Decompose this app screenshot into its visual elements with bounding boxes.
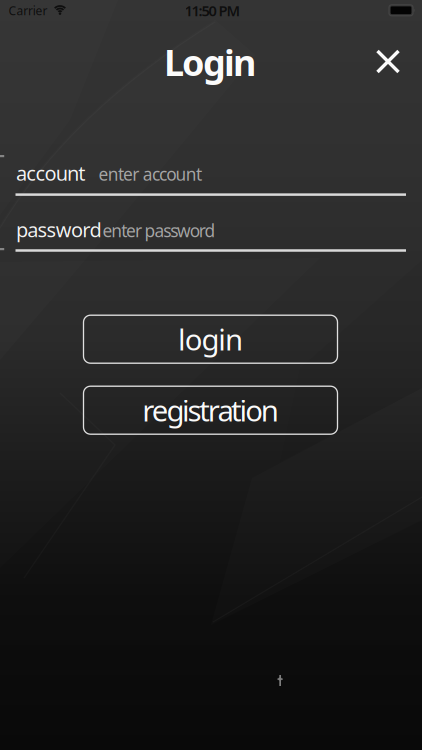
staticText: account — [16, 160, 85, 186]
button[interactable]: Close — [366, 39, 410, 83]
staticText: enter account — [98, 162, 202, 185]
staticText: 11:50 PM — [184, 1, 240, 20]
staticText: Carrier — [9, 2, 47, 18]
staticText: Login — [164, 38, 256, 86]
staticText: registration — [142, 391, 279, 430]
button[interactable]: registration — [83, 386, 337, 434]
button[interactable]: login — [83, 315, 337, 363]
staticText: password — [16, 216, 101, 243]
staticText: enter password — [102, 219, 215, 242]
staticText: login — [178, 320, 243, 359]
